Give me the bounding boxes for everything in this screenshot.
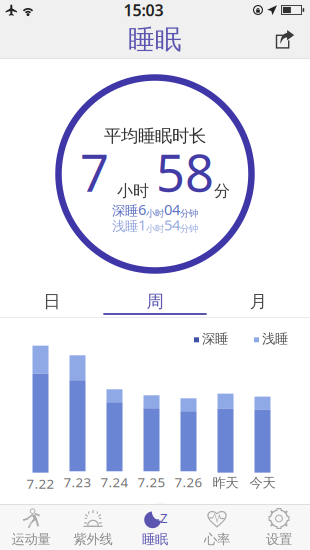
staticText: 分 (214, 181, 230, 201)
button[interactable]: 日 (0, 289, 103, 317)
button[interactable]: 周 (103, 289, 207, 317)
staticText: 小时 (117, 181, 149, 201)
staticText: 平均睡眠时长 (104, 125, 206, 147)
staticText: 7.24 (100, 473, 128, 491)
staticText: 浅睡 (112, 218, 138, 234)
staticText: 分钟 (180, 207, 198, 219)
staticText: 紫外线 (73, 531, 112, 547)
staticText: z (155, 514, 159, 527)
staticText: 7.26 (174, 473, 202, 491)
staticText: 睡眠 (128, 23, 182, 56)
staticText: 日 (43, 291, 60, 312)
button[interactable]: 分享 (266, 21, 302, 57)
button[interactable]: z (124, 504, 186, 550)
staticText: 6 (138, 199, 146, 219)
staticText: 深睡 (202, 331, 228, 347)
staticText: 睡眠 (142, 531, 168, 547)
staticText: 设置 (266, 531, 292, 547)
staticText: 分钟 (180, 223, 198, 234)
staticText: 昨天 (212, 475, 238, 491)
staticText: 心率 (204, 531, 230, 547)
staticText: 今天 (249, 475, 275, 491)
staticText: 58 (156, 138, 214, 206)
staticText: Z (160, 509, 168, 527)
staticText: 7.23 (63, 473, 91, 491)
staticText: 7 (80, 138, 109, 206)
staticText: 小时 (146, 223, 164, 234)
staticText: 7.25 (137, 473, 165, 491)
staticText: 月 (250, 291, 267, 312)
staticText: 周 (146, 291, 163, 312)
staticText: 04 (164, 199, 180, 219)
button[interactable]: 运动量 (0, 504, 62, 550)
staticText: 54 (164, 215, 180, 234)
button[interactable]: 心率 (186, 504, 248, 550)
button[interactable]: 月 (207, 289, 310, 317)
staticText: 深睡 (112, 203, 138, 219)
staticText: 浅睡 (262, 331, 288, 347)
staticText: 1 (138, 215, 146, 234)
button[interactable]: 紫外线 (62, 504, 124, 550)
staticText: 运动量 (11, 531, 50, 547)
button[interactable]: 设置 (248, 504, 310, 550)
staticText: 15:03 (123, 0, 163, 21)
staticText: 7.22 (26, 475, 54, 492)
staticText: 小时 (146, 207, 164, 219)
